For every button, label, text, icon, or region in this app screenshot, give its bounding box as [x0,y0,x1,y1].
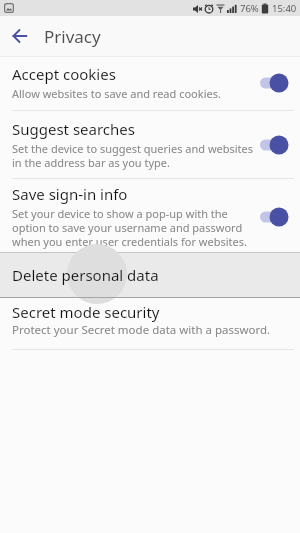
staticText: 76% [240,2,259,15]
staticText: Suggest searches [12,119,135,139]
staticText: Save sign-in info [12,184,128,204]
staticText: Set the device to suggest queries and we… [12,141,254,170]
staticText: 15:40 [272,2,297,15]
staticText: Secret mode security [12,302,160,322]
staticText: Delete personal data [12,265,159,285]
staticText: Protect your Secret mode data with a pas… [12,322,271,338]
staticText: Privacy [44,25,101,48]
button[interactable]: Save sign-in info [0,179,300,252]
button[interactable]: Delete personal data [0,253,300,297]
staticText: Accept cookies [12,64,116,84]
button[interactable] [0,16,40,56]
button[interactable]: Accept cookies [0,57,300,110]
staticText: Set your device to show a pop-up with th… [12,206,247,249]
staticText: Allow websites to save and read cookies. [12,86,221,101]
button[interactable]: Suggest searches [0,111,300,178]
button[interactable]: Secret mode security [0,298,300,349]
